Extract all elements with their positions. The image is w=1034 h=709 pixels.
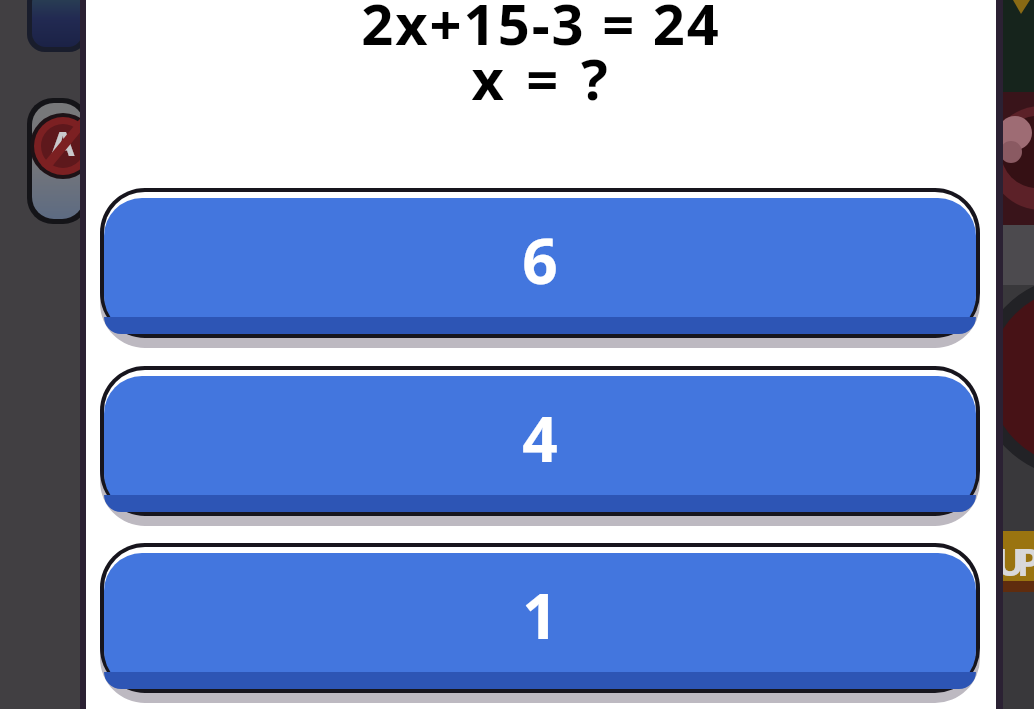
- staticText: 6: [522, 218, 558, 302]
- staticText: x = ?: [471, 40, 612, 116]
- button[interactable]: 6: [100, 188, 980, 338]
- button[interactable]: 1: [100, 543, 980, 693]
- staticText: U: [1003, 536, 1024, 586]
- staticText: A: [51, 120, 75, 166]
- staticText: P: [1017, 536, 1034, 586]
- button[interactable]: 4: [100, 366, 980, 516]
- staticText: 1: [522, 573, 558, 657]
- staticText: 2x+15-3 = 24: [361, 0, 721, 61]
- staticText: 4: [522, 396, 558, 480]
